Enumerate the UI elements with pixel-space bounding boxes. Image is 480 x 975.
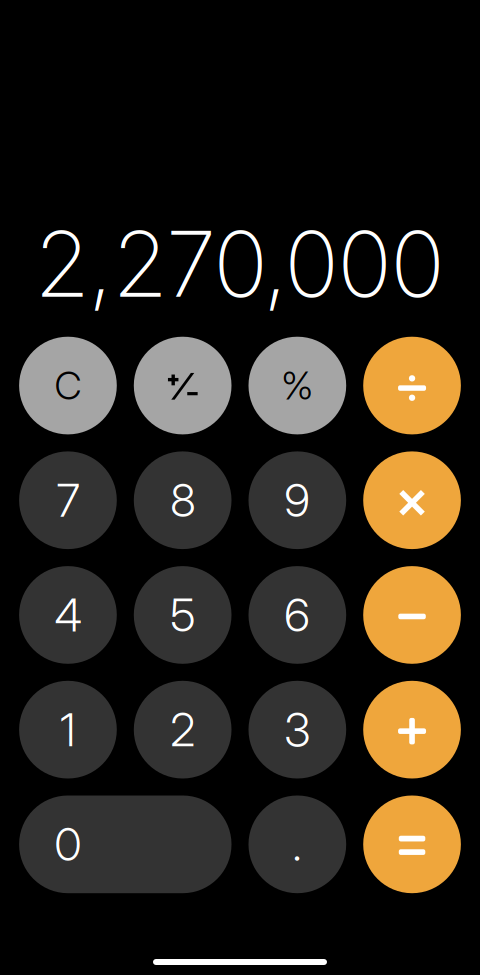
button[interactable]: 7	[19, 451, 117, 549]
button[interactable]: 9	[248, 451, 346, 549]
staticText: 0	[54, 817, 81, 872]
staticText: 7	[56, 473, 79, 528]
staticText: 9	[284, 473, 310, 528]
button[interactable]: Minus	[363, 566, 461, 664]
staticText: C	[54, 362, 81, 409]
staticText: 1	[60, 702, 76, 757]
button[interactable]: Plus minus	[134, 337, 231, 434]
button[interactable]: Multiply	[363, 451, 461, 549]
staticText: 6	[284, 587, 310, 642]
button[interactable]: 3	[248, 681, 346, 778]
button[interactable]: Divide	[363, 337, 461, 434]
button[interactable]: Equals	[363, 795, 461, 893]
button[interactable]: 1	[19, 681, 117, 778]
button[interactable]: Clear	[19, 337, 117, 434]
button[interactable]: 5	[134, 566, 231, 664]
button[interactable]: 8	[134, 451, 231, 549]
staticText: 4	[54, 587, 81, 642]
staticText: 5	[170, 587, 195, 642]
staticText: .	[292, 817, 302, 872]
button[interactable]: 4	[19, 566, 117, 664]
staticText: 3	[284, 702, 310, 757]
button[interactable]: 6	[248, 566, 346, 664]
button[interactable]: Plus	[363, 681, 461, 778]
button[interactable]: Percent	[248, 337, 346, 434]
staticText: %	[281, 362, 313, 409]
staticText: 2,270,000	[35, 209, 444, 319]
staticText: 8	[170, 473, 195, 528]
button[interactable]: Decimal point	[248, 795, 346, 893]
button[interactable]: 0	[19, 795, 231, 893]
staticText: 2	[170, 702, 195, 757]
button[interactable]: 2	[134, 681, 231, 778]
